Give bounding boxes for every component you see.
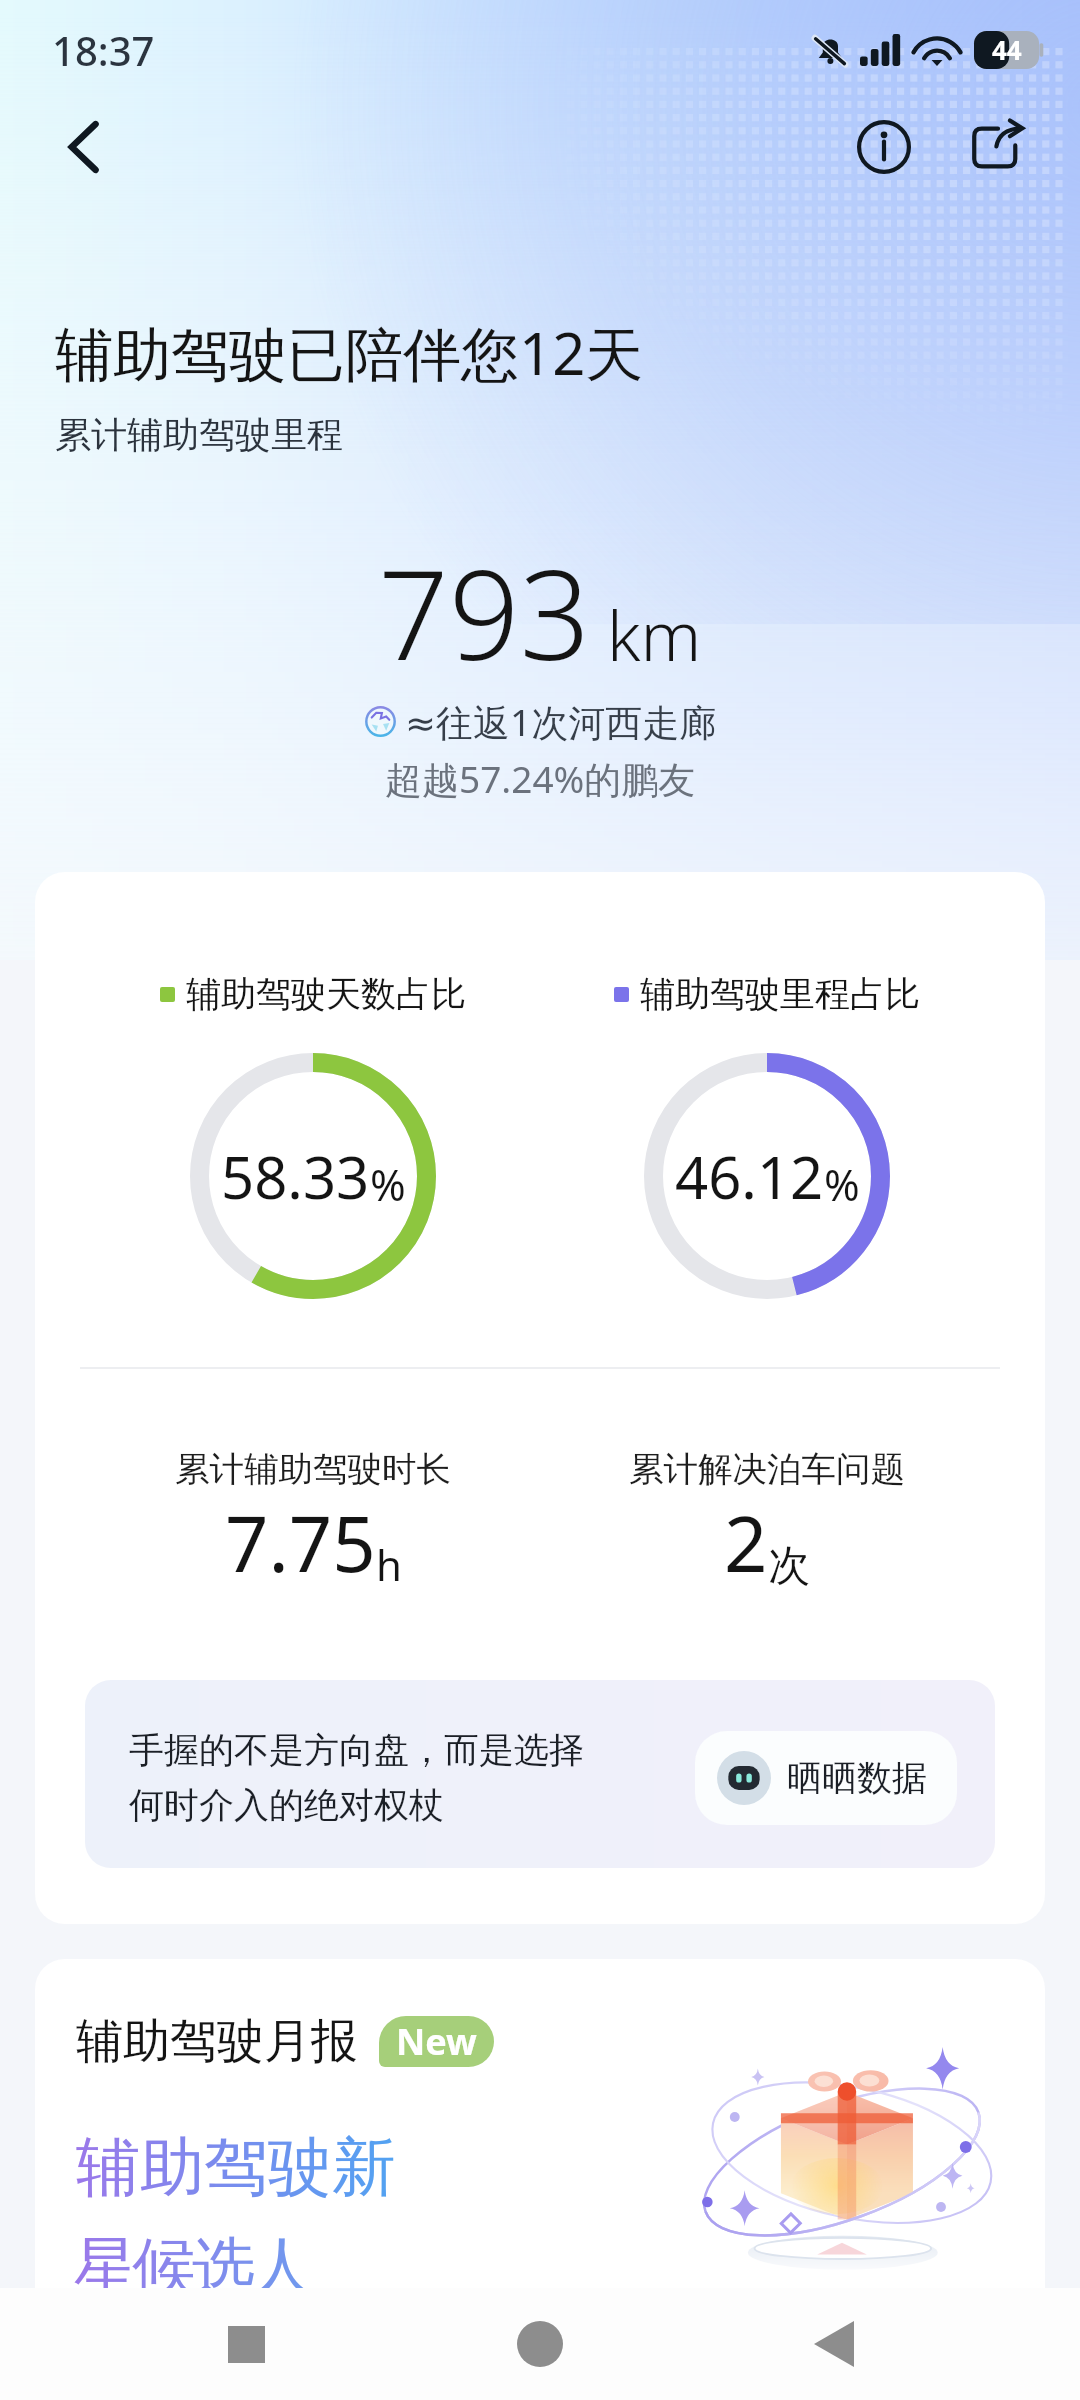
button[interactable]: Home bbox=[492, 2296, 588, 2392]
staticText: 星候选人 bbox=[76, 2227, 312, 2308]
button[interactable]: Info bbox=[848, 111, 920, 183]
staticText: 辅助驾驶天数占比 bbox=[186, 972, 466, 1016]
staticText: 辅助驾驶新 bbox=[76, 2127, 396, 2208]
button[interactable]: Recents bbox=[198, 2296, 294, 2392]
staticText: 累计解决泊车问题 bbox=[629, 1448, 905, 1491]
button[interactable]: 晒晒数据 bbox=[695, 1731, 957, 1825]
staticText: 辅助驾驶已陪伴您12天 bbox=[55, 313, 644, 392]
staticText: 2 bbox=[724, 1491, 768, 1595]
staticText: 何时介入的绝对权杖 bbox=[129, 1783, 444, 1827]
button[interactable]: Share bbox=[962, 111, 1034, 183]
staticText: 超越57.24%的鹏友 bbox=[385, 753, 696, 804]
staticText: 18:37 bbox=[52, 23, 155, 77]
button[interactable]: 辅助驾驶月报 bbox=[35, 1959, 1045, 2400]
button[interactable]: Back bbox=[786, 2296, 882, 2392]
staticText: 7.75 bbox=[225, 1491, 376, 1595]
staticText: 累计辅助驾驶里程 bbox=[55, 412, 343, 457]
staticText: 46.12 bbox=[675, 1137, 824, 1216]
button[interactable]: Back bbox=[52, 115, 116, 179]
staticText: 手握的不是方向盘，而是选择 bbox=[129, 1728, 584, 1772]
staticText: km bbox=[607, 588, 702, 681]
staticText: % bbox=[824, 1155, 860, 1214]
staticText: 次 bbox=[768, 1540, 810, 1593]
staticText: 辅助驾驶月报 bbox=[76, 2012, 358, 2071]
staticText: h bbox=[376, 1536, 402, 1593]
staticText: New bbox=[396, 2017, 477, 2066]
staticText: 累计辅助驾驶时长 bbox=[175, 1448, 451, 1491]
staticText: % bbox=[370, 1155, 406, 1214]
staticText: 辅助驾驶里程占比 bbox=[640, 972, 920, 1016]
staticText: 44 bbox=[992, 32, 1022, 67]
staticText: 晒晒数据 bbox=[787, 1756, 927, 1800]
staticText: 58.33 bbox=[221, 1137, 370, 1216]
staticText: 793 bbox=[378, 527, 591, 696]
staticText: ≈往返1次河西走廊 bbox=[405, 696, 717, 747]
